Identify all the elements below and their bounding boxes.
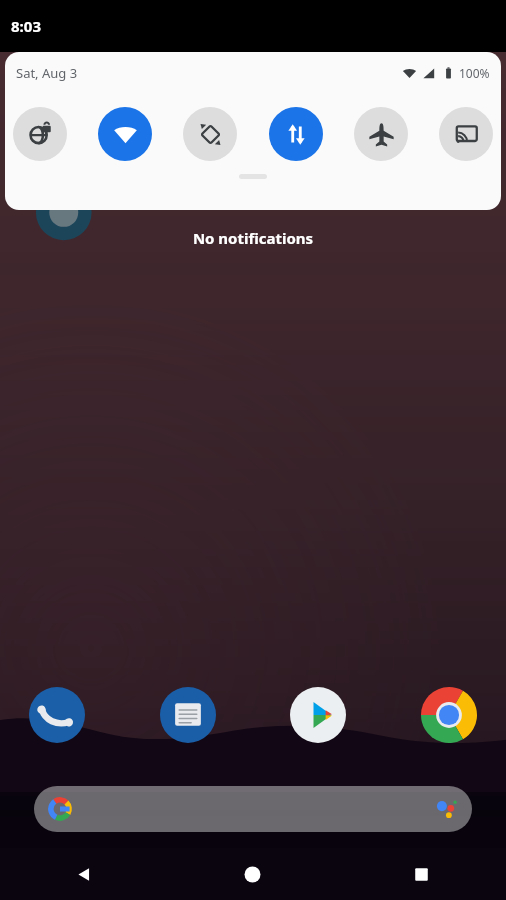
button[interactable]: Phone — [28, 686, 86, 744]
button[interactable]: Expand quick settings — [239, 174, 267, 179]
button[interactable]: Auto-rotate — [183, 107, 237, 161]
button[interactable]: Sat, Aug 3 — [16, 64, 78, 82]
button[interactable]: Cast — [439, 107, 493, 161]
staticText: 100% — [459, 65, 490, 81]
button[interactable]: Play Store — [289, 686, 347, 744]
button[interactable]: Wi-Fi — [98, 107, 152, 161]
button[interactable]: Mobile data — [269, 107, 323, 161]
button[interactable]: Back — [0, 848, 168, 900]
button[interactable]: Recent apps — [337, 848, 506, 900]
staticText: No notifications — [0, 228, 506, 248]
button[interactable]: Chrome — [420, 686, 478, 744]
button[interactable]: Home — [168, 848, 337, 900]
button[interactable]: Search with Google — [34, 786, 472, 832]
button[interactable]: Airplane mode — [354, 107, 408, 161]
staticText: 8:03 — [11, 16, 41, 36]
button[interactable]: Internet — [13, 107, 67, 161]
button[interactable]: Messages — [159, 686, 217, 744]
